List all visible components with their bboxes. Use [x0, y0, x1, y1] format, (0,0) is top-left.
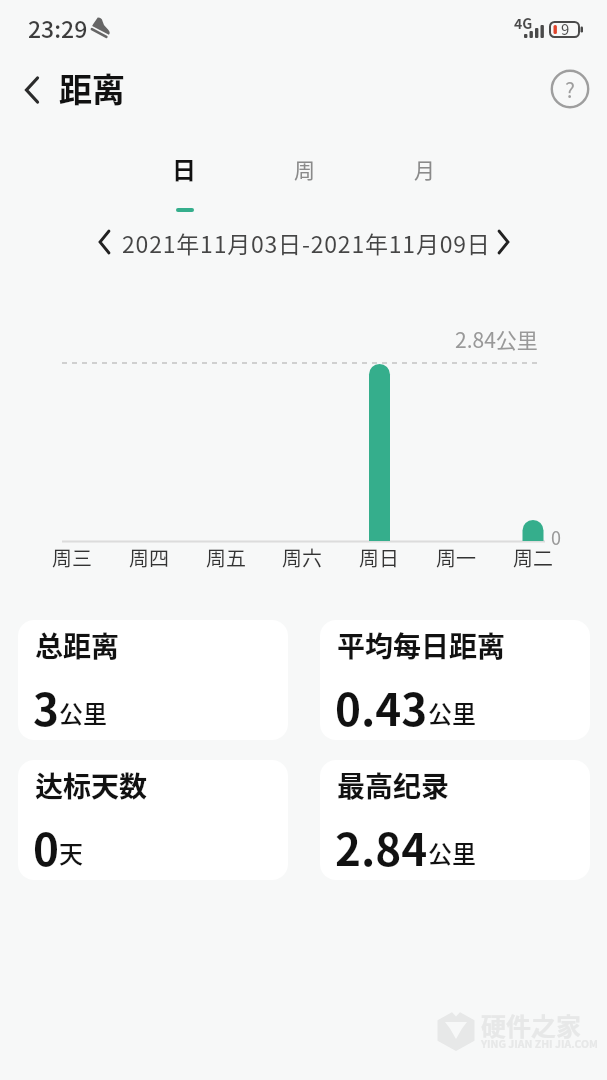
button[interactable]: 月 [364, 147, 484, 191]
staticText: ? [565, 74, 575, 104]
button[interactable]: 平均每日距离 [320, 620, 590, 740]
staticText: 总距离 [35, 625, 120, 666]
staticText: 周日 [359, 543, 399, 572]
staticText: 平均每日距离 [337, 625, 506, 666]
staticText: YING JIAN ZHI JIA.COM [481, 1036, 599, 1051]
staticText: 硬件之家 [481, 1007, 582, 1043]
staticText: 0 [33, 815, 59, 879]
staticText: 月 [414, 154, 435, 184]
staticText: 2.84公里 [455, 324, 538, 354]
button[interactable]: 总距离 [18, 620, 288, 740]
button[interactable] [14, 70, 52, 108]
staticText: 23:29 [28, 11, 88, 44]
staticText: 公里 [59, 695, 107, 730]
staticText: 最高纪录 [337, 765, 450, 806]
staticText: 周六 [282, 543, 322, 572]
button[interactable]: 周 [244, 147, 364, 191]
staticText: 周一 [436, 543, 476, 572]
staticText: 4G [514, 13, 533, 33]
button[interactable]: 最高纪录 [320, 760, 590, 880]
staticText: 周三 [52, 543, 92, 572]
staticText: 公里 [428, 695, 476, 730]
staticText: 周 [294, 154, 315, 184]
staticText: 周二 [513, 543, 553, 572]
button[interactable]: 日 [124, 146, 244, 190]
button[interactable]: ? [550, 69, 590, 109]
staticText: 0.43 [335, 675, 428, 739]
staticText: 天 [59, 835, 83, 870]
staticText: 公里 [428, 835, 476, 870]
staticText: 3 [33, 675, 59, 739]
staticText: 2021年11月03日-2021年11月09日 [122, 226, 491, 259]
staticText: 0 [551, 524, 561, 550]
staticText: 周四 [129, 543, 169, 572]
staticText: 距离 [59, 64, 125, 112]
button[interactable]: 达标天数 [18, 760, 288, 880]
staticText: 周五 [206, 543, 246, 572]
staticText: 9 [561, 18, 570, 40]
staticText: 2.84 [335, 815, 428, 879]
staticText: 达标天数 [35, 765, 148, 806]
staticText: 日 [172, 151, 196, 186]
button[interactable]: 2021年11月03日-2021年11月09日 [0, 224, 607, 260]
